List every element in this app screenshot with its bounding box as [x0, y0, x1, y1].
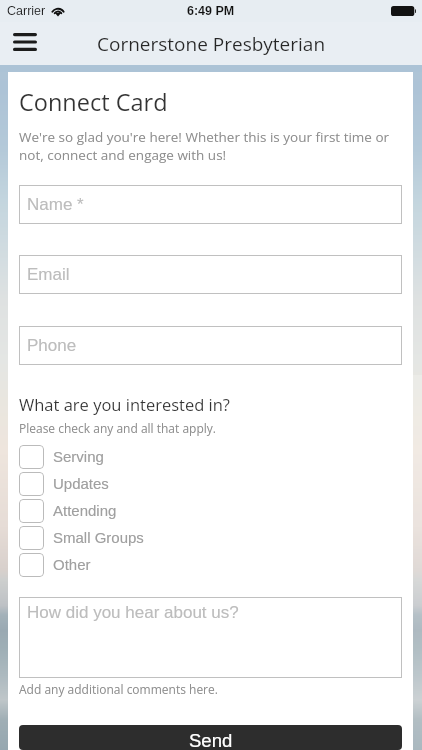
- staticText: 6:49 PM: [187, 4, 235, 18]
- staticText: Please check any and all that apply.: [19, 420, 216, 436]
- button[interactable]: Serving: [8, 443, 413, 470]
- staticText: Cornerstone Presbyterian: [97, 31, 326, 57]
- staticText: Phone: [27, 336, 77, 355]
- button[interactable]: Other: [8, 551, 413, 578]
- staticText: Email: [27, 265, 70, 284]
- staticText: We're so glad you're here! Whether this …: [19, 128, 403, 164]
- staticText: Other: [53, 556, 91, 573]
- button[interactable]: Small Groups: [8, 524, 413, 551]
- staticText: How did you hear about us?: [27, 603, 239, 622]
- button[interactable]: Updates: [8, 470, 413, 497]
- staticText: Send: [189, 730, 233, 750]
- staticText: Serving: [53, 448, 104, 465]
- staticText: Attending: [53, 502, 117, 519]
- button[interactable]: Email: [19, 255, 402, 294]
- button[interactable]: Send: [19, 725, 402, 750]
- button[interactable]: How did you hear about us?: [19, 597, 402, 678]
- staticText: Carrier: [7, 4, 46, 18]
- staticText: Connect Card: [19, 86, 168, 118]
- button[interactable]: Open navigation menu: [0, 22, 50, 65]
- staticText: Updates: [53, 475, 109, 492]
- staticText: What are you interested in?: [19, 393, 230, 415]
- button[interactable]: Name *: [19, 185, 402, 224]
- button[interactable]: Attending: [8, 497, 413, 524]
- staticText: Small Groups: [53, 529, 144, 546]
- staticText: Add any additional comments here.: [19, 681, 218, 697]
- staticText: Name *: [27, 195, 84, 214]
- button[interactable]: Phone: [19, 326, 402, 365]
